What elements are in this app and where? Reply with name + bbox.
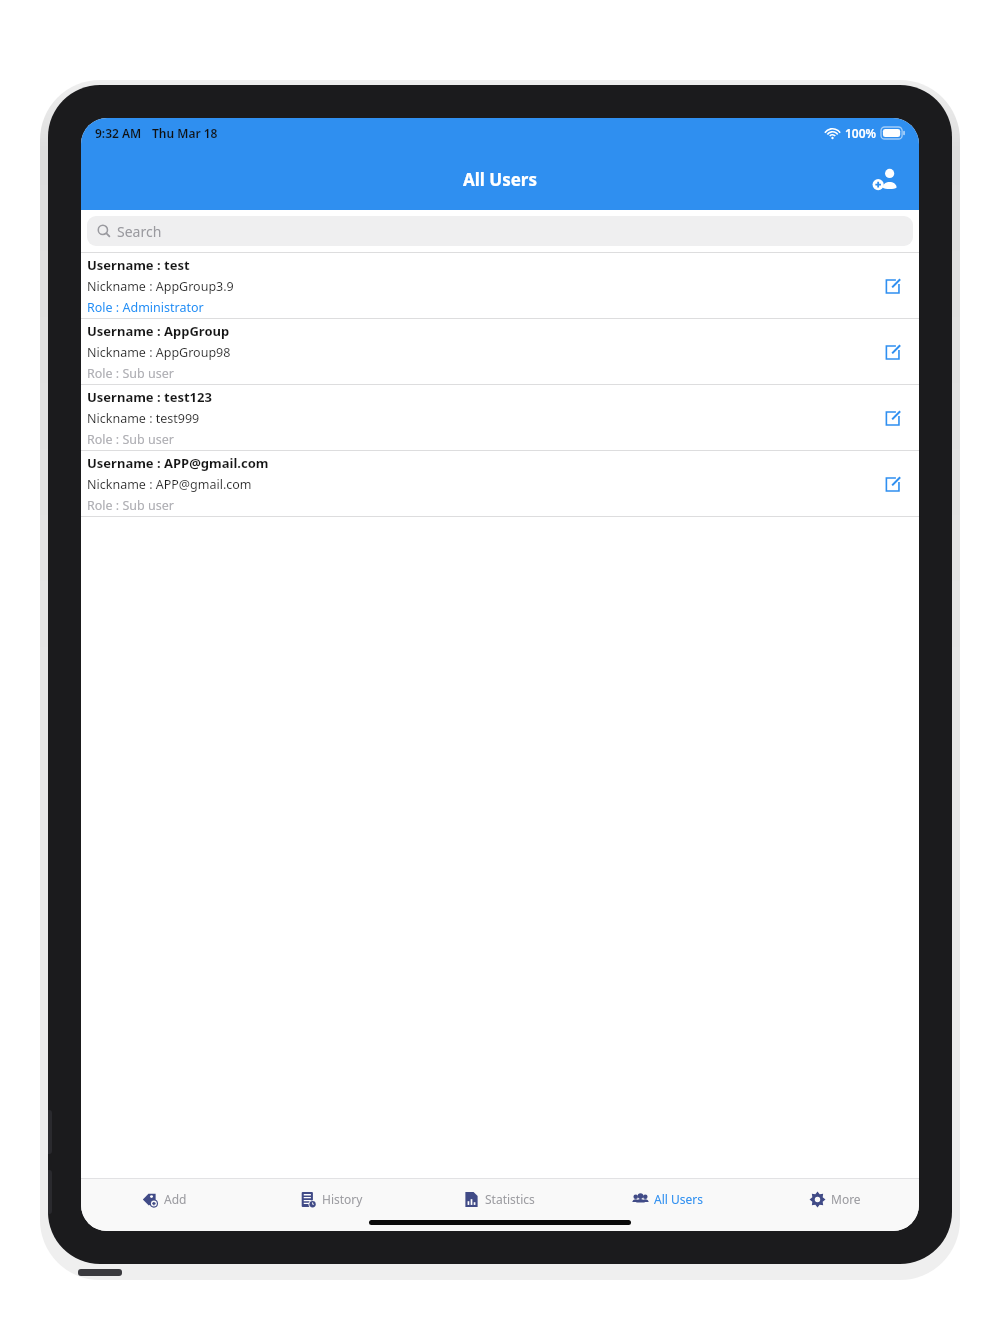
button[interactable]: More [751, 1179, 919, 1219]
staticText: All Users [463, 168, 537, 191]
staticText: Thu Mar 18 [152, 125, 218, 141]
button[interactable]: Username : test [81, 253, 919, 319]
staticText: Nickname : AppGroup3.9 [87, 278, 234, 295]
button[interactable]: Search [87, 216, 913, 246]
staticText: More [831, 1191, 861, 1207]
staticText: Search [117, 222, 162, 241]
staticText: Nickname : AppGroup98 [87, 344, 231, 361]
button[interactable]: Add [81, 1179, 248, 1219]
button[interactable]: Edit APP@gmail.com [875, 467, 909, 501]
staticText: 9:32 AM [95, 125, 142, 141]
staticText: Nickname : APP@gmail.com [87, 476, 252, 493]
button[interactable]: Username : test123 [81, 385, 919, 451]
button[interactable]: History [248, 1179, 415, 1219]
staticText: Role : Administrator [87, 299, 204, 316]
button[interactable]: Edit test [875, 269, 909, 303]
button[interactable]: Username : AppGroup [81, 319, 919, 385]
button[interactable]: Username : APP@gmail.com [81, 451, 919, 517]
staticText: Add [164, 1191, 187, 1207]
button[interactable]: Statistics [415, 1179, 583, 1219]
staticText: Role : Sub user [87, 431, 174, 448]
staticText: Username : AppGroup [87, 322, 230, 340]
staticText: Username : APP@gmail.com [87, 454, 269, 472]
staticText: All Users [654, 1191, 703, 1207]
staticText: Nickname : test999 [87, 410, 200, 427]
button[interactable]: All Users [583, 1179, 751, 1219]
staticText: History [322, 1191, 363, 1207]
button[interactable]: Add user [863, 156, 909, 202]
button[interactable]: Edit AppGroup [875, 335, 909, 369]
staticText: Statistics [485, 1191, 535, 1207]
staticText: Username : test123 [87, 388, 212, 406]
button[interactable]: Edit test123 [875, 401, 909, 435]
staticText: Role : Sub user [87, 497, 174, 514]
staticText: 100% [845, 125, 877, 141]
staticText: Role : Sub user [87, 365, 174, 382]
staticText: Username : test [87, 256, 190, 274]
